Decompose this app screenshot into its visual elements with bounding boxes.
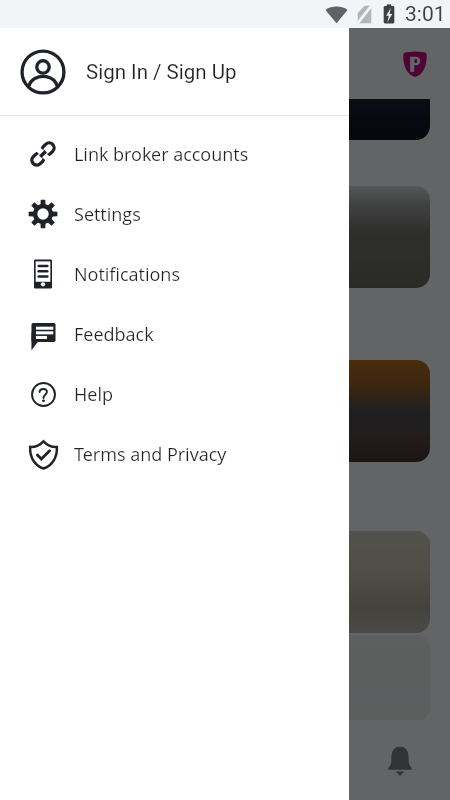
button[interactable]: [20, 360, 430, 462]
button[interactable]: Feedback: [0, 304, 349, 364]
button[interactable]: Terms and Privacy: [0, 424, 349, 484]
staticText: Feedback: [74, 322, 154, 347]
button[interactable]: Sign In / Sign Up: [0, 28, 349, 115]
button[interactable]: [20, 186, 430, 288]
staticText: Notifications: [74, 262, 180, 287]
staticText: Settings: [74, 202, 141, 227]
button[interactable]: Help: [0, 364, 349, 424]
button[interactable]: Home: [403, 51, 427, 77]
button[interactable]: [20, 531, 430, 633]
staticText: Link broker accounts: [74, 142, 249, 167]
button[interactable]: Link broker accounts: [0, 124, 349, 184]
button[interactable]: Notifications: [0, 244, 349, 304]
button[interactable]: [20, 635, 430, 720]
button[interactable]: Settings: [0, 184, 349, 244]
staticText: 3:01: [405, 2, 446, 27]
staticText: Sign In / Sign Up: [86, 60, 237, 84]
button[interactable]: Notifications: [385, 745, 415, 776]
button[interactable]: [20, 99, 430, 140]
staticText: Terms and Privacy: [74, 442, 227, 467]
staticText: Help: [74, 382, 113, 407]
